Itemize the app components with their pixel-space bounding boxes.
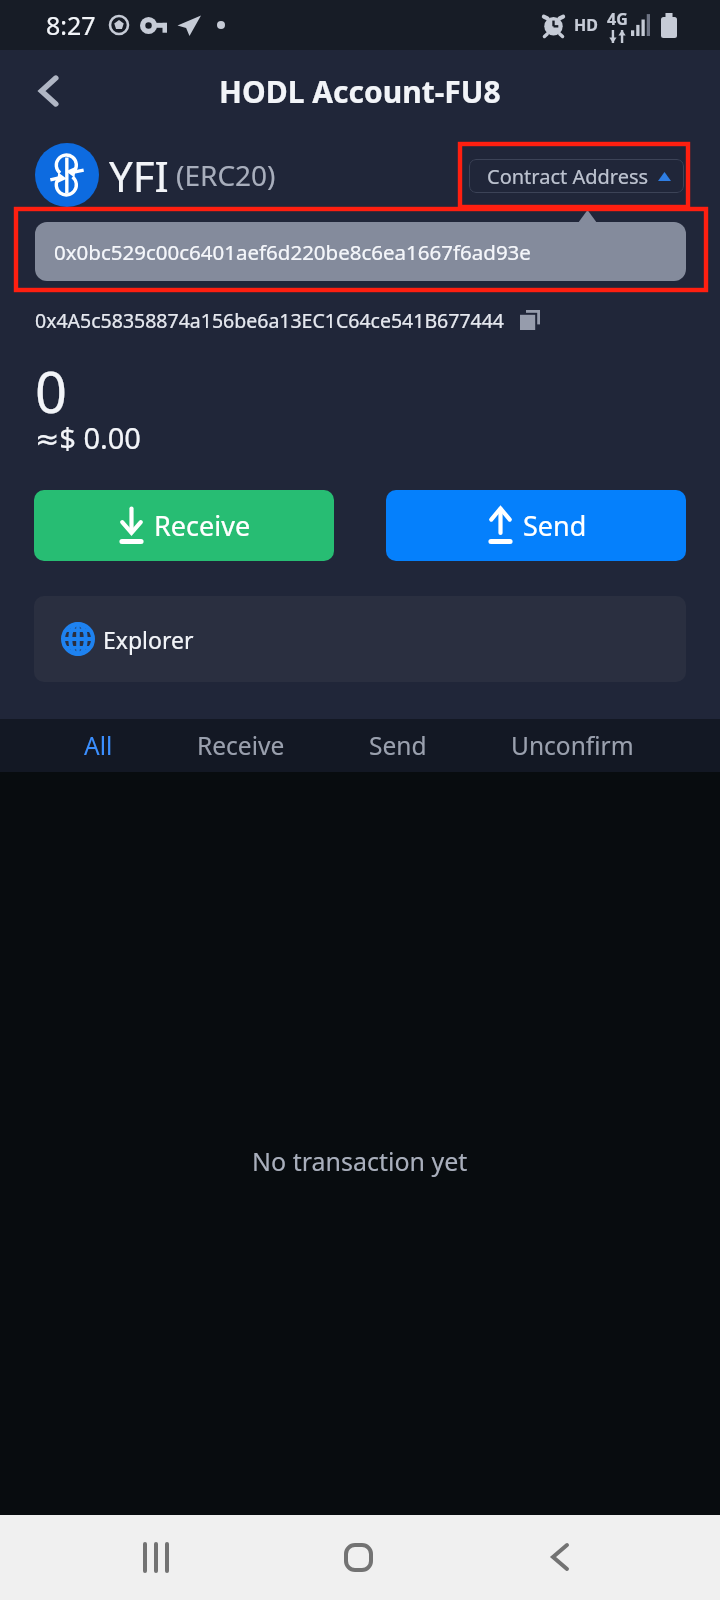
staticText: ≈$ 0.00 [35, 418, 141, 457]
button[interactable]: 0x0bc529c00c6401aef6d220be8c6ea1667f6ad9… [35, 222, 686, 281]
staticText: 0x4A5c58358874a156be6a13EC1C64ce541B6774… [35, 307, 504, 334]
button[interactable]: Contract Address [469, 159, 684, 193]
staticText: 4G [607, 8, 628, 30]
staticText: (ERC20) [176, 156, 276, 194]
button[interactable]: All [42, 719, 155, 772]
staticText: Send [369, 729, 427, 762]
button[interactable]: Explorer [34, 596, 686, 682]
staticText: HD [574, 14, 598, 36]
button[interactable]: Home [324, 1523, 392, 1591]
staticText: 0 [35, 353, 68, 429]
button[interactable]: Receive [155, 719, 327, 772]
button[interactable]: Receive [34, 490, 334, 561]
staticText: Unconfirm [511, 729, 634, 762]
staticText: No transaction yet [252, 1144, 468, 1178]
staticText: Receive [197, 729, 285, 762]
button[interactable]: Copy address [514, 304, 546, 336]
button[interactable]: Unconfirm [469, 719, 676, 772]
staticText: Send [523, 507, 587, 544]
staticText: HODL Account-FU8 [219, 71, 501, 112]
staticText: YFI [109, 147, 169, 204]
staticText: 8:27 [46, 8, 96, 42]
button[interactable]: Back [526, 1523, 594, 1591]
staticText: Contract Address [487, 163, 649, 190]
button[interactable]: Send [327, 719, 469, 772]
button[interactable]: Send [386, 490, 686, 561]
button[interactable]: Back [20, 62, 78, 120]
staticText: Receive [154, 507, 251, 544]
staticText: Explorer [103, 624, 194, 655]
staticText: All [84, 729, 113, 762]
button[interactable]: Recent apps [122, 1523, 190, 1591]
staticText: 0x0bc529c00c6401aef6d220be8c6ea1667f6ad9… [54, 238, 531, 266]
